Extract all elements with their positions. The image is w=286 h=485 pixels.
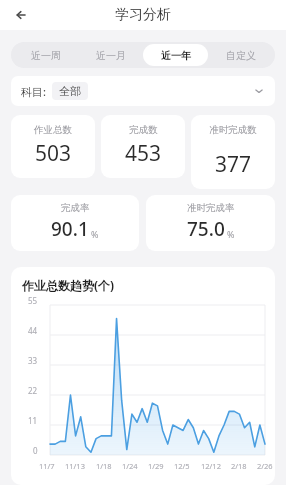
staticText: 12/5 bbox=[174, 461, 190, 471]
staticText: 近一年 bbox=[161, 49, 191, 62]
button[interactable]: Back bbox=[10, 3, 34, 27]
staticText: 准时完成数 bbox=[209, 124, 257, 136]
staticText: 作业总数 bbox=[34, 124, 72, 136]
button[interactable]: 自定义 bbox=[208, 44, 273, 66]
staticText: 22 bbox=[28, 385, 38, 395]
staticText: 1/24 bbox=[122, 461, 138, 471]
staticText: 44 bbox=[28, 325, 38, 335]
staticText: 33 bbox=[28, 355, 38, 365]
button[interactable]: 准时完成数 bbox=[191, 115, 275, 189]
staticText: 377 bbox=[215, 150, 252, 179]
staticText: 90.1 bbox=[51, 216, 89, 242]
staticText: 1/29 bbox=[148, 461, 164, 471]
staticText: 11/7 bbox=[39, 461, 55, 471]
button[interactable]: 科目: bbox=[11, 76, 275, 106]
staticText: 科目: bbox=[21, 84, 46, 99]
staticText: 453 bbox=[125, 139, 162, 168]
staticText: 75.0 bbox=[187, 216, 225, 242]
staticText: 55 bbox=[28, 295, 38, 305]
staticText: 学习分析 bbox=[115, 6, 171, 24]
staticText: 近一月 bbox=[96, 49, 126, 62]
staticText: 准时完成率 bbox=[187, 202, 235, 214]
staticText: 完成数 bbox=[129, 124, 158, 136]
staticText: % bbox=[227, 228, 235, 240]
staticText: 12/12 bbox=[201, 461, 221, 471]
staticText: % bbox=[91, 228, 99, 240]
staticText: 11 bbox=[28, 415, 38, 425]
button[interactable]: 准时完成率 bbox=[146, 195, 275, 251]
staticText: 0 bbox=[33, 445, 38, 455]
button[interactable]: 近一周 bbox=[13, 44, 78, 66]
staticText: 全部 bbox=[59, 84, 81, 98]
staticText: 1/18 bbox=[96, 461, 112, 471]
staticText: 完成率 bbox=[61, 202, 90, 214]
button[interactable]: 完成率 bbox=[11, 195, 139, 251]
button[interactable]: 作业总数 bbox=[11, 115, 95, 178]
button[interactable]: 近一月 bbox=[78, 44, 143, 66]
staticText: 作业总数趋势(个) bbox=[22, 277, 115, 293]
staticText: 2/18 bbox=[231, 461, 247, 471]
staticText: 2/26 bbox=[257, 461, 273, 471]
button[interactable]: 近一年 bbox=[143, 44, 208, 66]
other: Expand bbox=[253, 85, 265, 97]
staticText: 自定义 bbox=[226, 49, 256, 62]
button[interactable]: 完成数 bbox=[101, 115, 185, 178]
staticText: 11/13 bbox=[65, 461, 85, 471]
staticText: 近一周 bbox=[31, 49, 61, 62]
staticText: 503 bbox=[35, 139, 72, 168]
